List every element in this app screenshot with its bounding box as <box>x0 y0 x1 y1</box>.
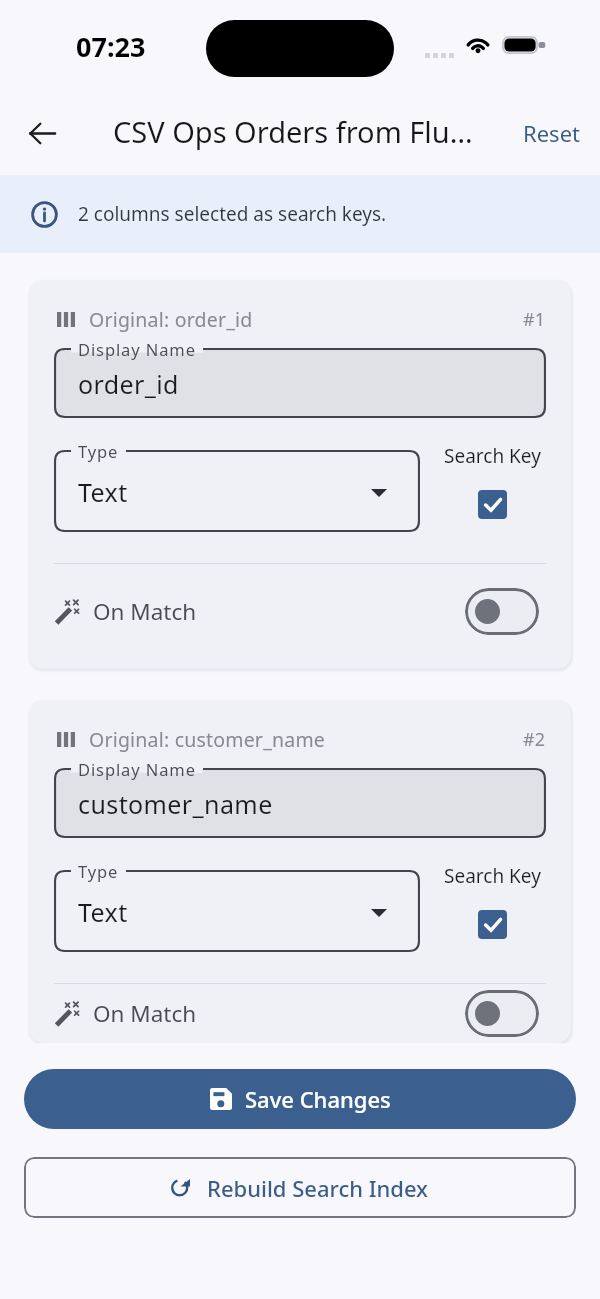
button[interactable]: On Match toggle <box>465 588 539 635</box>
staticText: Type <box>78 440 119 462</box>
button[interactable]: Rebuild Search Index <box>24 1157 576 1218</box>
button[interactable]: On Match toggle <box>465 990 539 1037</box>
staticText: #2 <box>523 727 545 752</box>
staticText: 2 columns selected as search keys. <box>78 201 387 227</box>
staticText: Rebuild Search Index <box>207 1173 429 1203</box>
button[interactable]: Search key checkbox <box>478 910 507 939</box>
staticText: Save Changes <box>245 1084 391 1114</box>
button[interactable]: On Match <box>29 984 571 1043</box>
staticText: Display Name <box>78 338 196 360</box>
staticText: On Match <box>93 596 197 627</box>
staticText: Original: order_id <box>89 306 253 333</box>
staticText: Reset <box>523 118 580 148</box>
staticText: Search Key <box>444 443 541 469</box>
button[interactable]: Reset <box>512 110 591 156</box>
staticText: Display Name <box>78 758 196 780</box>
staticText: On Match <box>93 998 197 1029</box>
button[interactable]: Back <box>17 108 67 158</box>
staticText: Text <box>78 475 128 509</box>
staticText: Original: customer_name <box>89 726 326 753</box>
staticText: order_id <box>78 367 179 401</box>
button[interactable]: Save Changes <box>24 1069 576 1129</box>
staticText: customer_name <box>78 787 273 821</box>
button[interactable]: On Match <box>29 564 571 659</box>
staticText: CSV Ops Orders from Flu… <box>113 112 473 151</box>
staticText: Type <box>78 860 119 882</box>
button[interactable]: Search key checkbox <box>478 490 507 519</box>
staticText: Search Key <box>444 863 541 889</box>
staticText: Text <box>78 895 128 929</box>
staticText: 07:23 <box>76 28 146 65</box>
staticText: #1 <box>523 307 545 332</box>
